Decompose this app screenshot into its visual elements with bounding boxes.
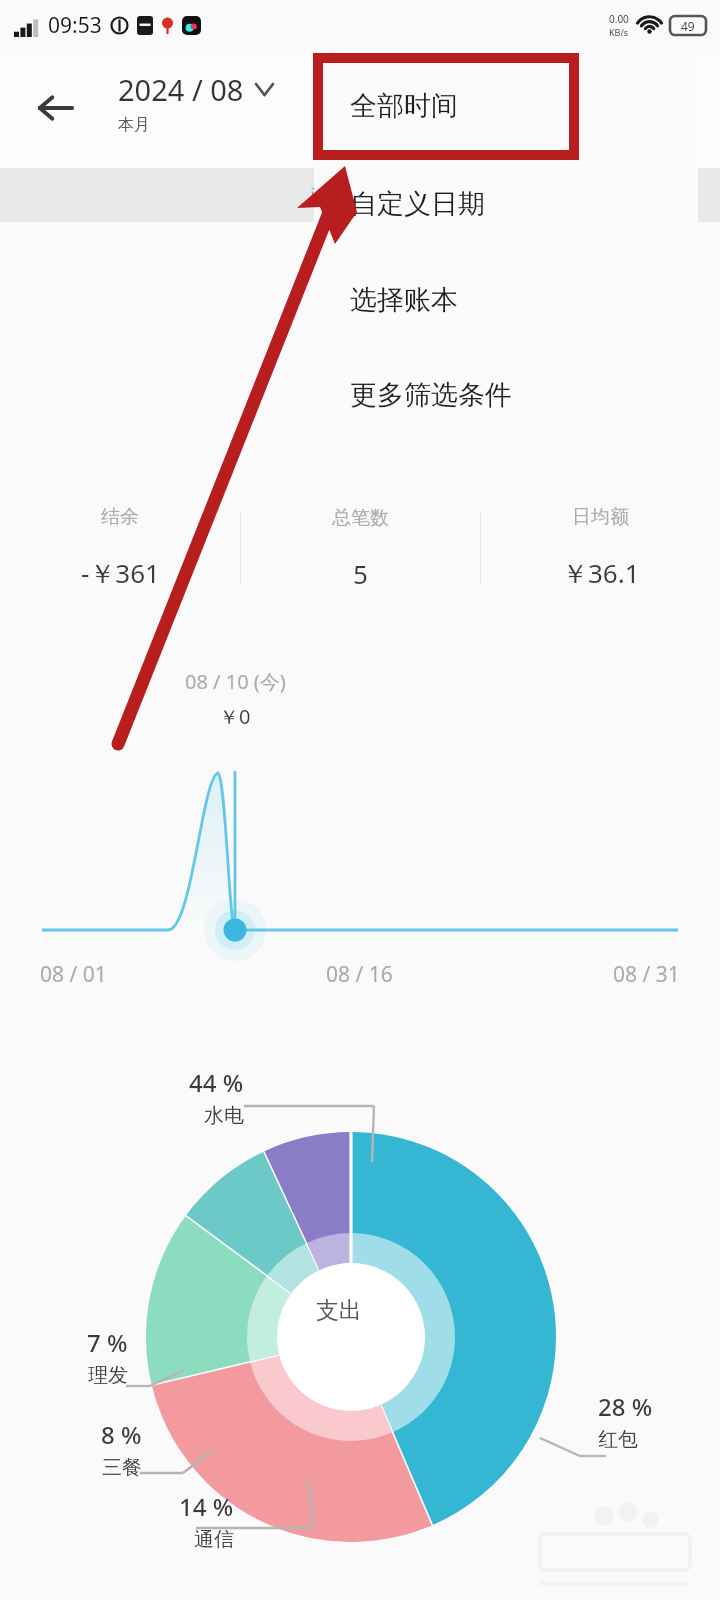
staticText: 三餐	[102, 1455, 142, 1480]
staticText: 总收入	[332, 288, 389, 312]
staticText: -￥361	[81, 555, 160, 591]
staticText: 红包	[598, 1427, 638, 1452]
staticText: 本月	[118, 115, 150, 135]
staticText: 理发	[88, 1363, 128, 1388]
button[interactable]: 选择账本	[314, 252, 698, 348]
button[interactable]: 总笔数	[241, 492, 480, 604]
staticText: 日均额	[572, 505, 629, 529]
staticText: ￥0	[336, 348, 385, 390]
staticText: 08 / 01	[40, 960, 107, 989]
staticText: 全部时间	[350, 89, 458, 123]
button[interactable]: 7 %	[40, 1326, 128, 1388]
staticText: 49	[681, 18, 695, 34]
button[interactable]: 14 %	[140, 1490, 234, 1552]
staticText: 结余	[101, 505, 139, 529]
staticText: 0.00	[609, 12, 629, 26]
staticText: 08 / 10 (今)	[185, 668, 286, 695]
staticText: 通信	[194, 1527, 234, 1552]
staticText: 选择账本	[350, 283, 458, 317]
button[interactable]: 2024 / 08	[118, 70, 348, 135]
button[interactable]: 结余	[0, 492, 240, 604]
staticText: KB/s	[609, 26, 629, 38]
staticText: ￥0	[219, 703, 251, 730]
staticText: 总笔数	[332, 506, 389, 530]
staticText: 28 %	[598, 1390, 653, 1423]
button[interactable]: 28 %	[598, 1390, 702, 1452]
staticText: 08 / 16	[326, 960, 393, 989]
staticText: 已选1个账本	[310, 183, 411, 208]
staticText: 支出	[316, 1296, 362, 1325]
staticText: 5	[353, 556, 368, 591]
button[interactable]: Back	[24, 76, 88, 140]
staticText: 8 %	[101, 1418, 142, 1451]
staticText: 水电	[204, 1103, 244, 1128]
staticText: 7 %	[87, 1326, 128, 1359]
staticText: 09:53	[48, 11, 102, 40]
staticText: 14 %	[179, 1490, 234, 1523]
button[interactable]: 更多筛选条件	[314, 348, 698, 441]
staticText: 更多筛选条件	[350, 378, 512, 412]
button[interactable]: 8 %	[54, 1418, 142, 1480]
staticText: 44 %	[189, 1066, 244, 1099]
button[interactable]: 全部时间	[314, 55, 698, 156]
button[interactable]: 已选1个账本	[0, 168, 720, 222]
button[interactable]: 日均额	[481, 492, 720, 604]
staticText: 08 / 31	[613, 960, 680, 989]
button[interactable]: 44 %	[158, 1066, 244, 1128]
staticText: 自定义日期	[350, 187, 485, 221]
button[interactable]: 自定义日期	[314, 156, 698, 252]
staticText: ￥36.1	[562, 555, 640, 591]
staticText: 2024 / 08	[118, 70, 244, 109]
